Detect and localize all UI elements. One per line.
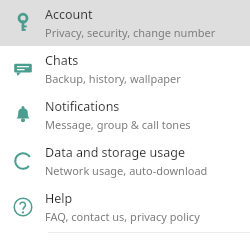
staticText: Privacy, security, change number [45,25,216,40]
button[interactable]: Account [0,0,250,46]
staticText: Notifications [45,98,120,115]
staticText: Data and storage usage [45,144,186,161]
other: Data and storage usage [0,138,45,184]
button[interactable]: Notifications [0,92,250,138]
staticText: FAQ, contact us, privacy policy [45,209,200,224]
other: Chats [0,46,45,92]
button[interactable]: Chats [0,46,250,92]
other: Account [0,0,45,46]
button[interactable]: Data and storage usage [0,138,250,184]
staticText: Backup, history, wallpaper [45,71,181,86]
button[interactable]: Help [0,184,250,230]
staticText: Message, group & call tones [45,117,191,132]
staticText: Chats [45,52,79,69]
staticText: Account [45,6,93,23]
staticText: Help [45,190,73,207]
other: Help [0,184,45,230]
other: Notifications [0,92,45,138]
staticText: Network usage, auto-download [45,163,208,178]
